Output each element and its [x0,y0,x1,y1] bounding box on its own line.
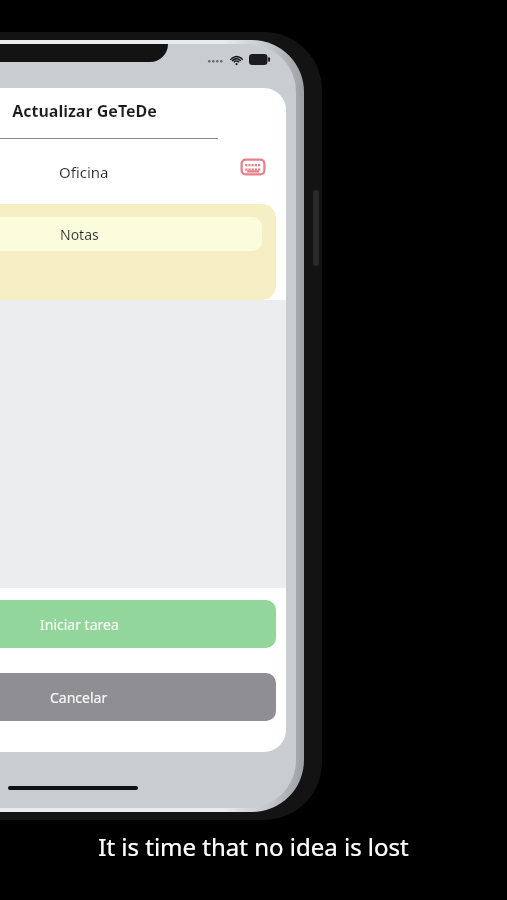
button[interactable]: Actualizar GeTeDe [0,88,276,194]
staticText: Iniciar tarea [40,615,119,634]
button[interactable]: Cancelar [0,673,276,721]
staticText: Cancelar [50,688,108,707]
button[interactable]: Iniciar tarea [0,600,276,648]
button[interactable]: Notas [0,204,276,300]
button[interactable]: Keyboard [240,158,266,176]
staticText: Actualizar GeTeDe [12,100,157,122]
staticText: It is time that no idea is lost [98,830,409,863]
staticText: Oficina [59,162,109,182]
staticText: Notas [60,225,99,244]
